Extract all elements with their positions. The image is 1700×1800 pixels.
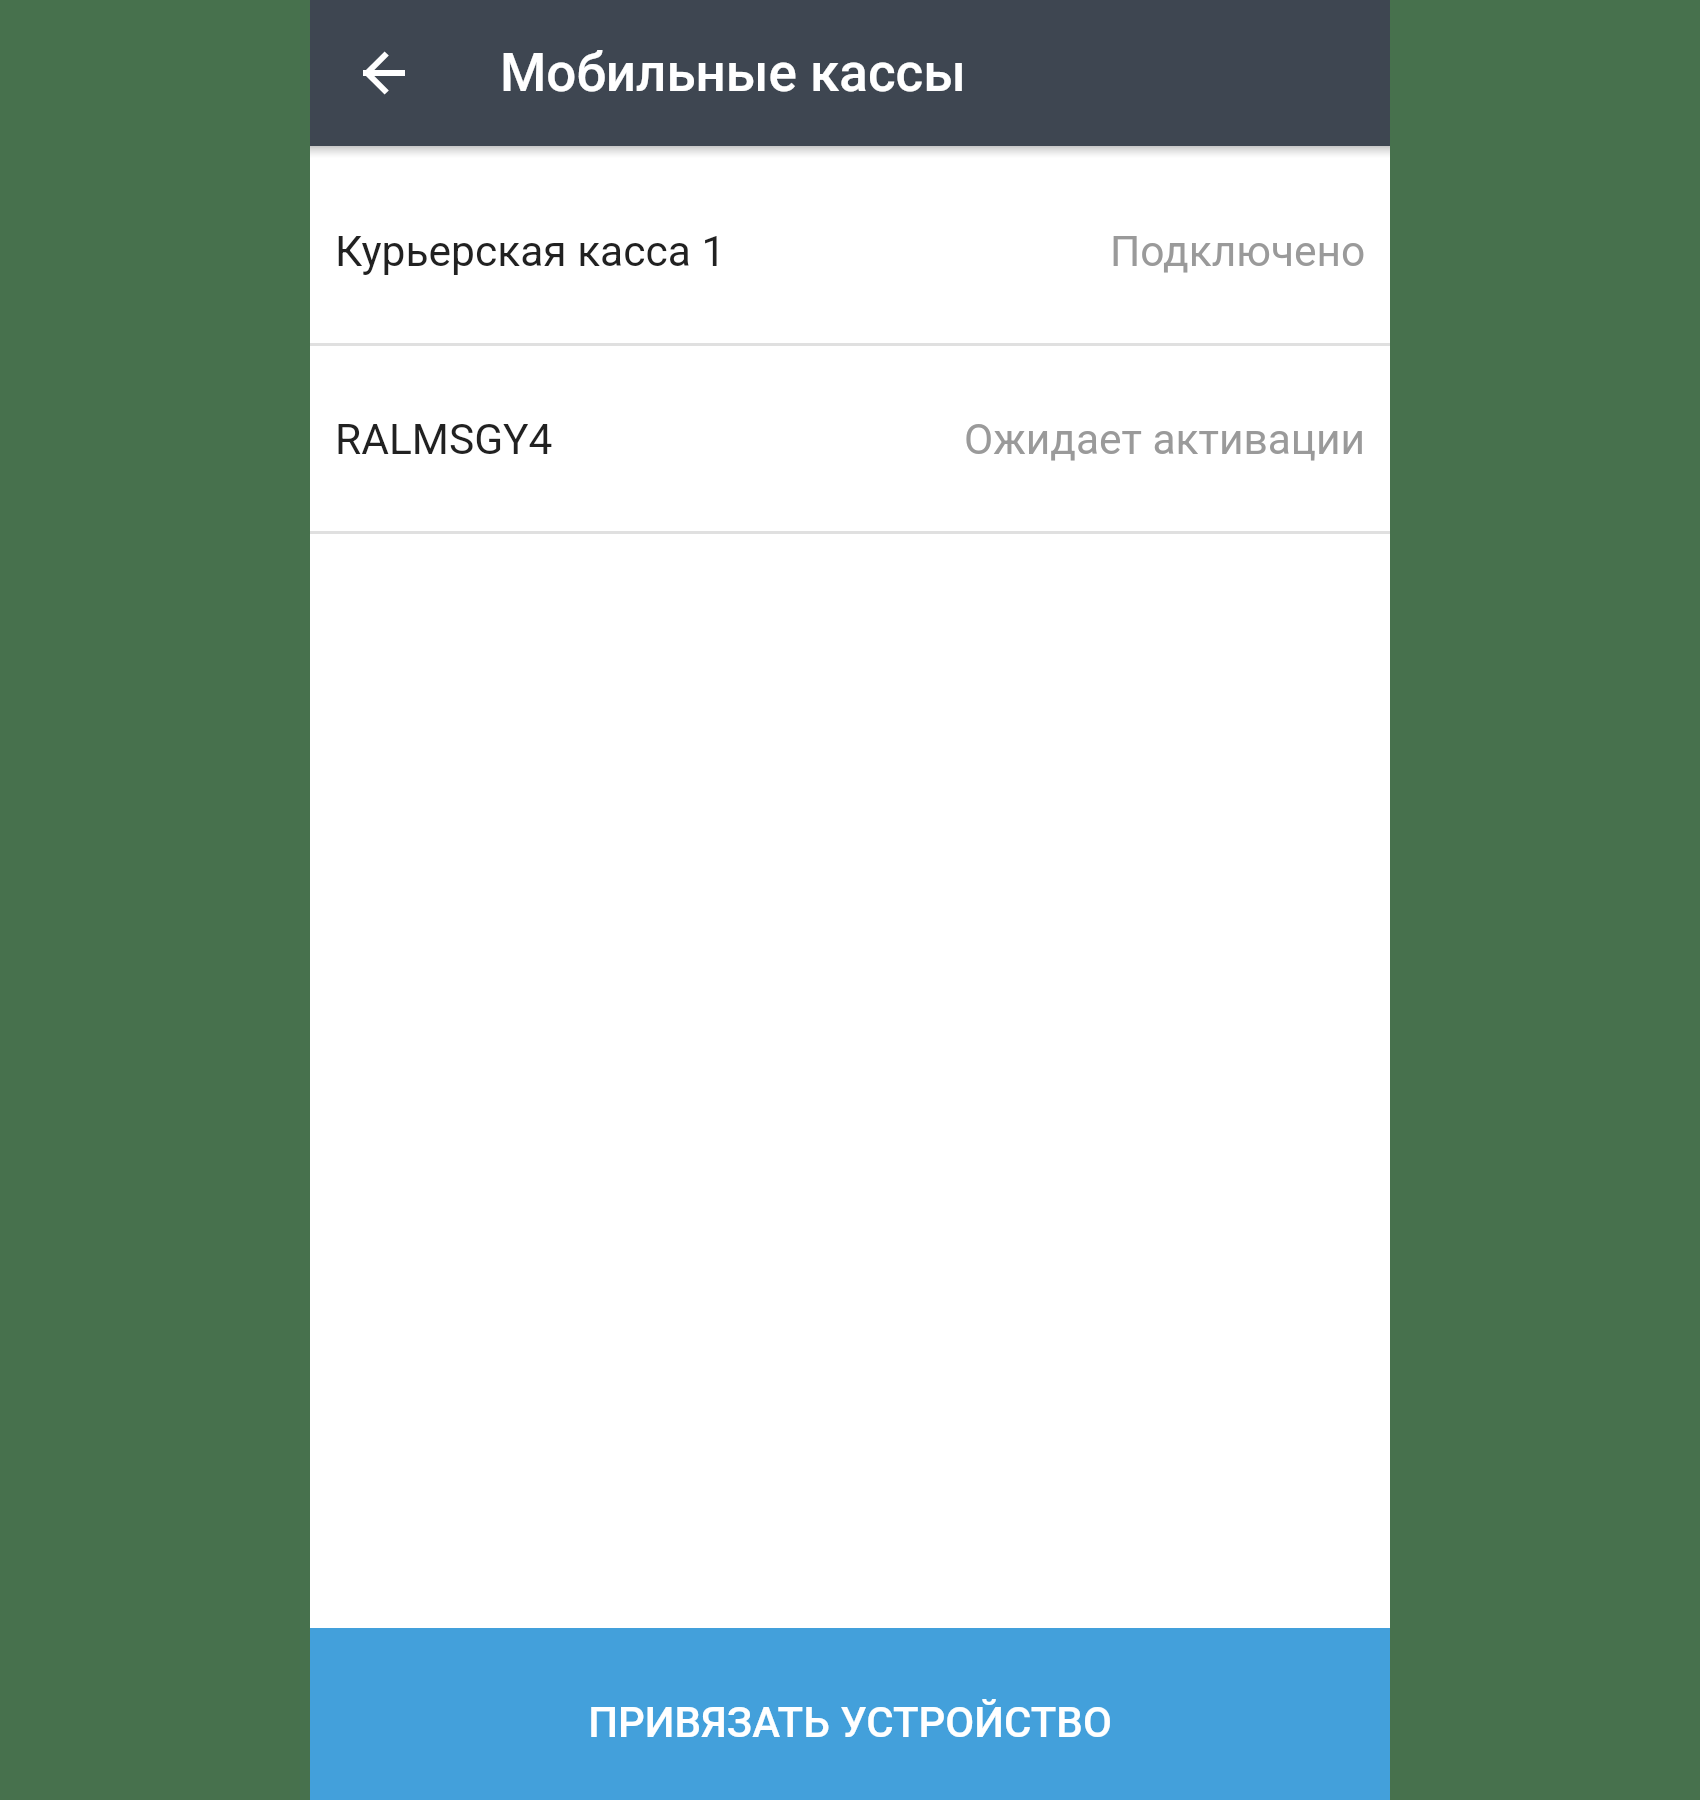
staticText: Ожидает активации (964, 415, 1366, 465)
staticText: Мобильные кассы (500, 42, 966, 104)
button[interactable]: RALMSGY4 (310, 346, 1390, 531)
staticText: Курьерская касса 1 (335, 227, 726, 277)
button[interactable]: Back (334, 23, 434, 123)
staticText: Подключено (1110, 227, 1366, 277)
staticText: ПРИВЯЗАТЬ УСТРОЙСТВО (588, 1698, 1112, 1747)
staticText: RALMSGY4 (335, 415, 553, 465)
button[interactable]: Курьерская касса 1 (310, 158, 1390, 343)
button[interactable]: ПРИВЯЗАТЬ УСТРОЙСТВО (310, 1628, 1390, 1800)
